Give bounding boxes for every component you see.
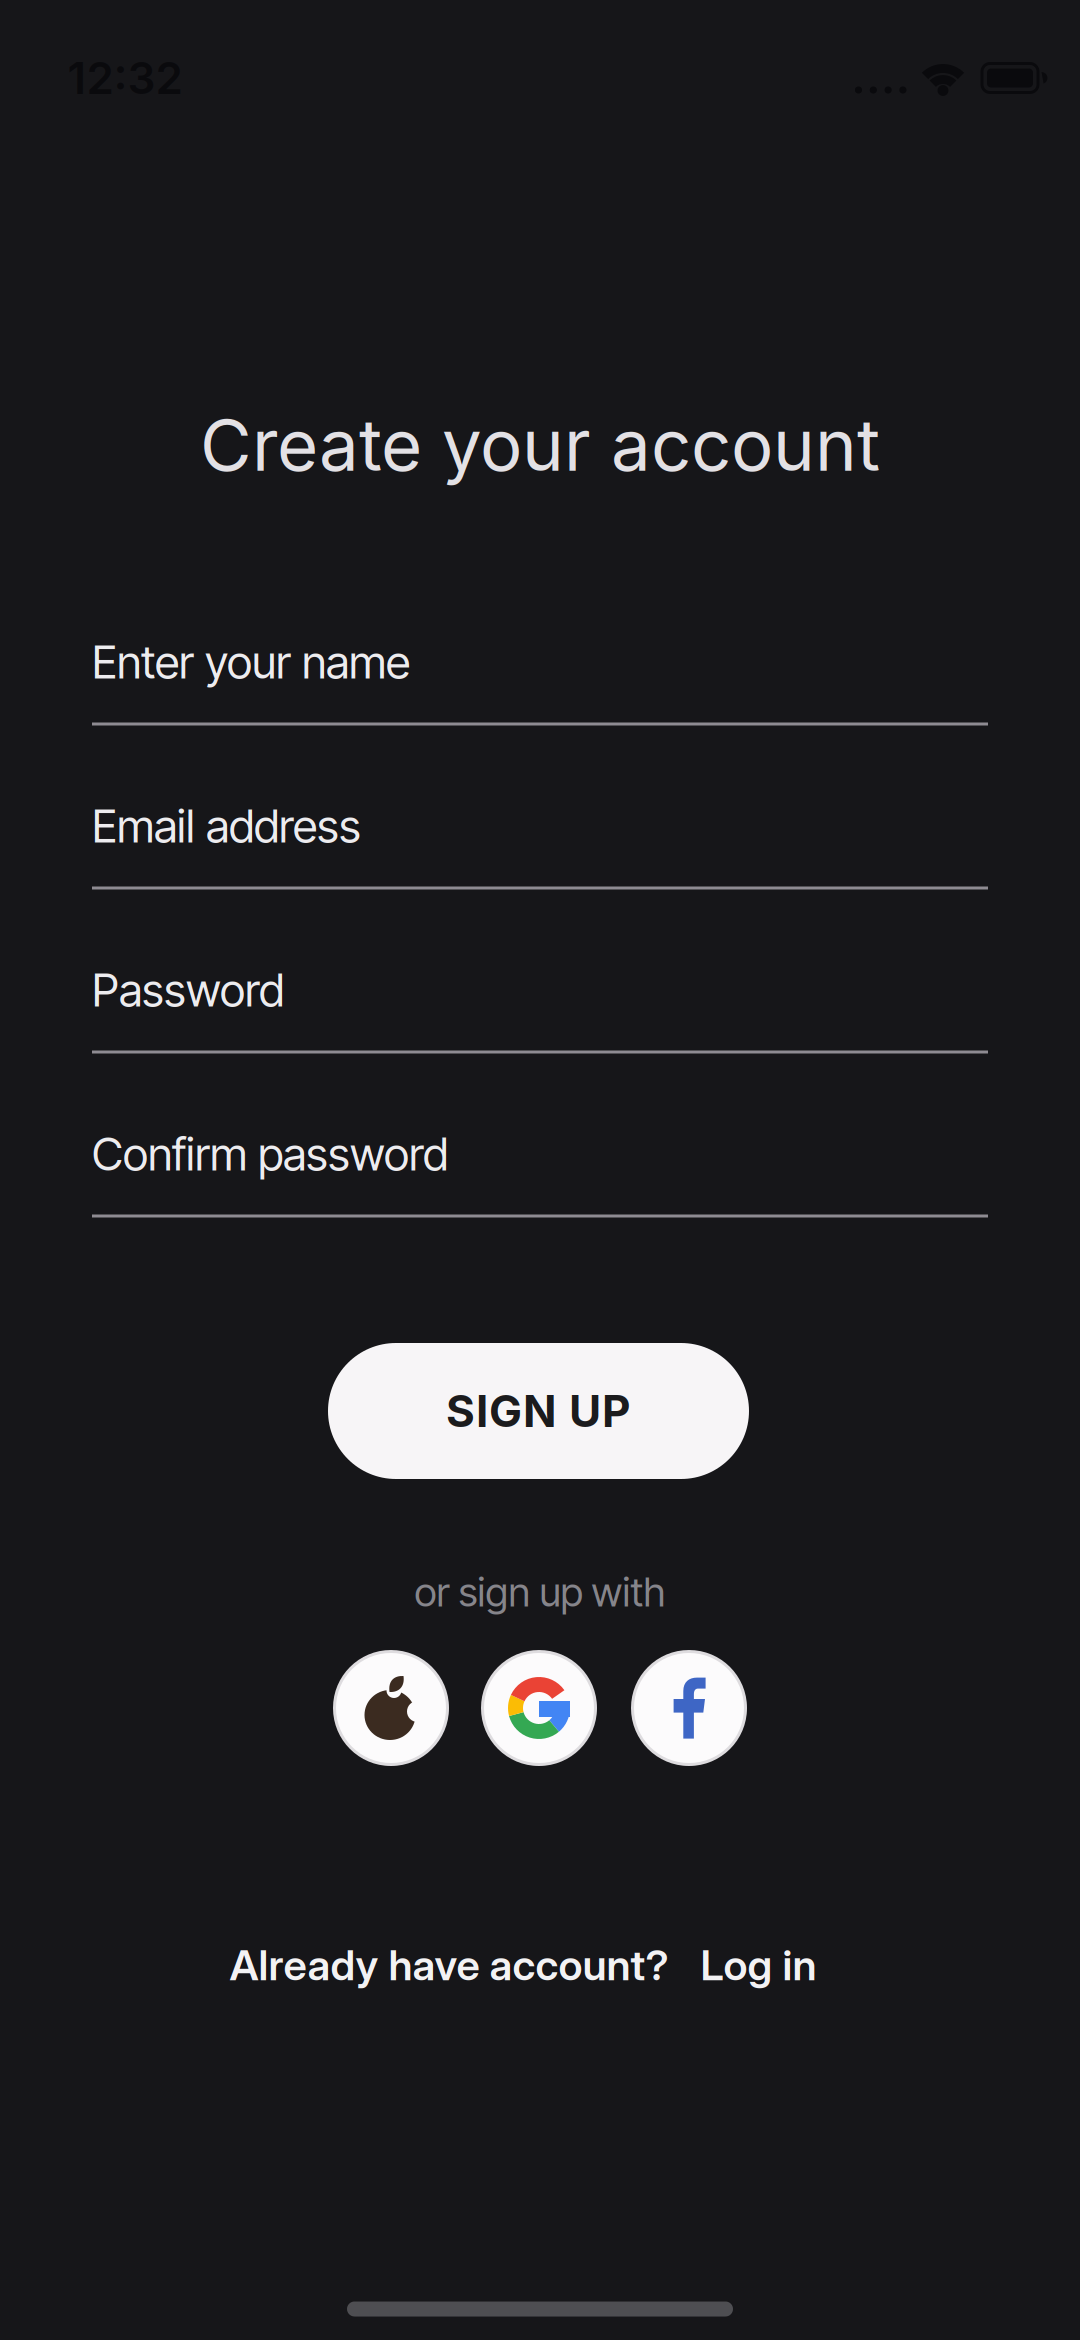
staticText: Log in: [700, 1940, 816, 1990]
staticText: SIGN UP: [446, 1384, 631, 1438]
button[interactable]: Sign up with Apple: [333, 1650, 449, 1766]
staticText: Confirm password: [92, 1127, 448, 1181]
button[interactable]: Sign up with Facebook: [631, 1650, 747, 1766]
button[interactable]: Log in: [700, 1940, 816, 1990]
button[interactable]: Sign up with Google: [481, 1650, 597, 1766]
staticText: 12:32: [67, 51, 182, 105]
staticText: Create your account: [200, 402, 880, 488]
staticText: Already have account?: [229, 1940, 668, 1990]
staticText: Password: [92, 963, 284, 1017]
button[interactable]: SIGN UP: [328, 1343, 749, 1479]
staticText: Email address: [92, 799, 361, 853]
staticText: or sign up with: [414, 1568, 665, 1616]
staticText: Enter your name: [92, 635, 410, 689]
